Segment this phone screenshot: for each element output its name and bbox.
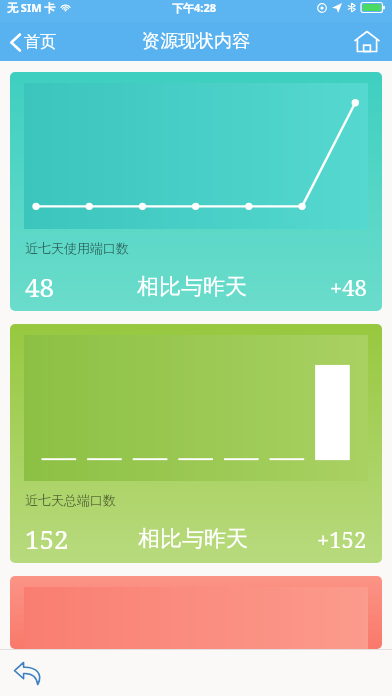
- button[interactable]: Back: [0, 653, 57, 693]
- staticText: 相比与昨天: [137, 273, 247, 301]
- button[interactable]: 近七天总端口数: [10, 324, 382, 563]
- staticText: 48: [25, 269, 55, 304]
- staticText: 下午4:28: [172, 0, 216, 15]
- button[interactable]: 首页: [0, 28, 66, 56]
- staticText: 近七天使用端口数: [25, 240, 129, 256]
- staticText: 无 SIM 卡: [7, 0, 56, 15]
- staticText: +152: [317, 524, 367, 554]
- staticText: +48: [330, 272, 367, 302]
- button[interactable]: [10, 576, 382, 649]
- staticText: 首页: [24, 32, 56, 52]
- staticText: 近七天总端口数: [25, 492, 116, 508]
- staticText: 资源现状内容: [142, 30, 250, 53]
- button[interactable]: Home: [342, 24, 392, 59]
- button[interactable]: 近七天使用端口数: [10, 72, 382, 311]
- staticText: 相比与昨天: [138, 525, 248, 553]
- staticText: 152: [25, 521, 69, 556]
